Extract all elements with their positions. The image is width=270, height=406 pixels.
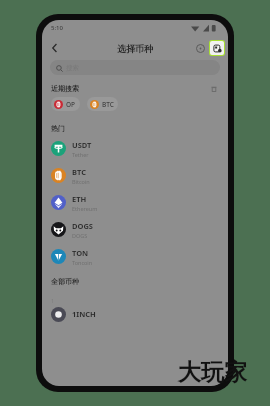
staticText: Bitcoin xyxy=(72,178,90,185)
staticText: 1 xyxy=(51,297,55,304)
button[interactable]: ETH xyxy=(42,189,228,216)
staticText: 近期搜索 xyxy=(51,84,79,93)
staticText: Tether xyxy=(72,151,89,158)
staticText: BTC xyxy=(72,167,86,177)
button[interactable]: Scan xyxy=(210,41,224,55)
button[interactable]: BTC xyxy=(87,97,118,111)
button[interactable]: Help xyxy=(192,40,208,56)
button[interactable]: Back xyxy=(46,39,64,57)
staticText: ETH xyxy=(72,194,87,204)
button[interactable]: USDT xyxy=(42,135,228,162)
staticText: TON xyxy=(72,248,89,258)
button[interactable]: BTC xyxy=(42,162,228,189)
staticText: 选择币种 xyxy=(117,43,153,54)
staticText: 热门 xyxy=(51,124,65,133)
button[interactable]: DOGS xyxy=(42,216,228,243)
button[interactable]: OP xyxy=(51,97,80,111)
staticText: 大玩家 xyxy=(178,358,247,387)
staticText: BTC xyxy=(102,100,114,109)
button[interactable]: 搜索 xyxy=(50,60,220,75)
staticText: OP xyxy=(66,100,76,109)
staticText: Ethereum xyxy=(72,205,98,212)
staticText: Toncoin xyxy=(72,259,93,266)
staticText: DOGS xyxy=(72,221,93,231)
button[interactable]: TON xyxy=(42,243,228,270)
button[interactable]: 1INCH xyxy=(42,304,228,324)
staticText: USDT xyxy=(72,140,92,150)
button[interactable]: Clear history xyxy=(208,83,219,94)
staticText: DOGS xyxy=(72,232,88,239)
staticText: 5:10 xyxy=(51,24,63,32)
staticText: 全部币种 xyxy=(51,277,79,286)
staticText: 1INCH xyxy=(72,309,96,319)
